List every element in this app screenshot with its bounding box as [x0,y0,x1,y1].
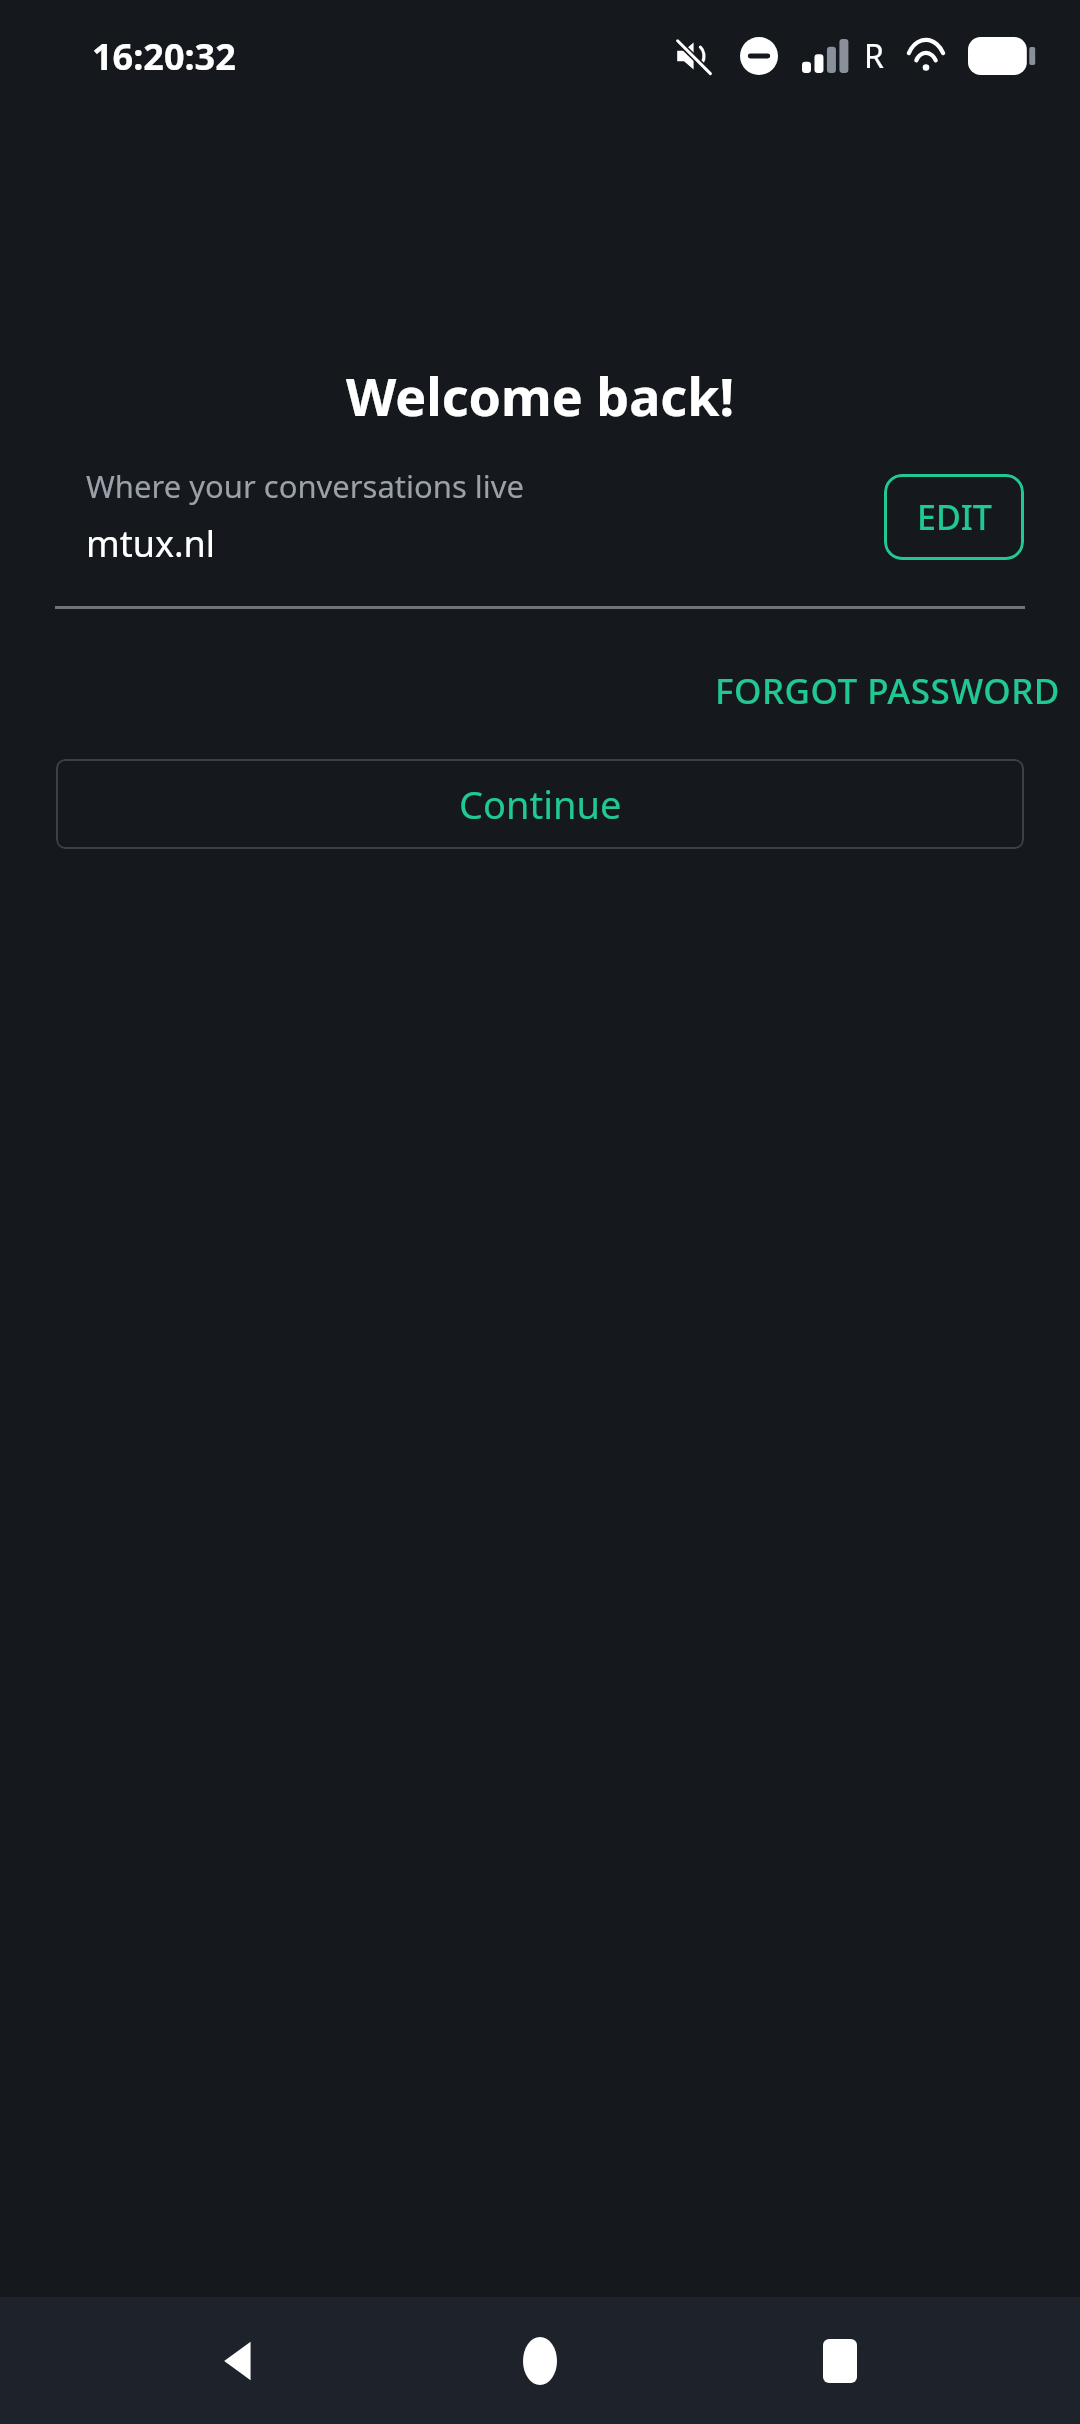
staticText: EDIT [917,494,992,540]
button[interactable]: Continue [56,759,1024,849]
staticText: Welcome back! [0,360,1080,431]
staticText: Continue [459,778,622,830]
button[interactable]: Back [180,2301,300,2421]
staticText: 16:20:32 [92,32,236,81]
staticText: FORGOT PASSWORD [715,667,1060,715]
button[interactable]: EDIT [884,474,1024,560]
staticText: mtux.nl [86,519,216,568]
staticText: R [864,34,884,78]
button[interactable]: Home [480,2301,600,2421]
staticText: Where your conversations live [86,465,525,507]
button[interactable]: FORGOT PASSWORD [695,653,1080,729]
button[interactable]: Recent apps [780,2301,900,2421]
